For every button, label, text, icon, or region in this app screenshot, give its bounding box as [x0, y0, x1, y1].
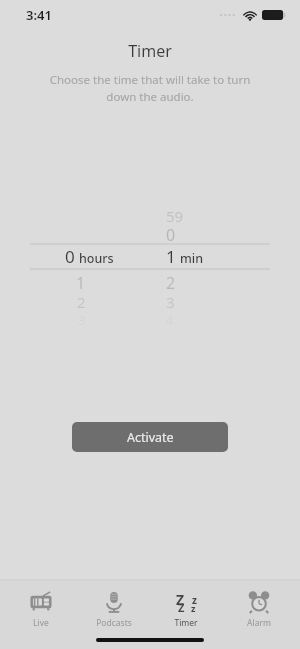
staticText: 3:41 — [26, 6, 52, 24]
button[interactable]: Live — [10, 588, 72, 631]
staticText: min — [180, 250, 204, 267]
staticText: 1 — [76, 272, 86, 292]
staticText: hours — [79, 250, 114, 267]
button[interactable]: Timer — [155, 588, 217, 631]
staticText: Live — [33, 617, 49, 629]
staticText: Podcasts — [96, 617, 132, 629]
staticText: 2 — [166, 272, 176, 292]
staticText: Timer — [128, 40, 172, 62]
staticText: Alarm — [247, 617, 271, 629]
button[interactable]: Alarm — [228, 588, 290, 631]
staticText: z — [191, 602, 196, 614]
other: Timer — [175, 591, 197, 613]
other: Live — [30, 591, 52, 613]
staticText: Z — [176, 590, 185, 609]
staticText: Z — [178, 600, 185, 615]
staticText: 2 — [77, 292, 86, 311]
staticText: Timer — [174, 617, 198, 629]
button[interactable]: Podcasts — [83, 588, 145, 631]
staticText: 3 — [166, 292, 175, 311]
staticText: 59 — [166, 206, 184, 224]
button[interactable]: Activate — [72, 422, 228, 452]
other: Podcasts — [103, 591, 125, 613]
staticText: Choose the time that will take to turn d… — [42, 72, 258, 104]
staticText: 0 — [65, 245, 75, 268]
staticText: 0 — [166, 224, 176, 244]
staticText: z — [192, 593, 197, 607]
staticText: Activate — [127, 429, 174, 446]
other: Alarm — [248, 591, 270, 613]
staticText: 1 — [166, 245, 176, 268]
